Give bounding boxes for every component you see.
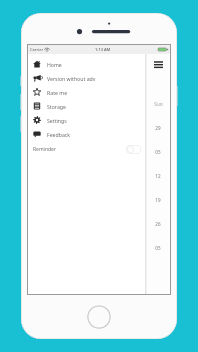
button[interactable]: Rate me [28,85,145,99]
staticText: Home [47,61,62,68]
button[interactable]: Settings [28,113,145,127]
staticText: 05 [155,149,161,155]
staticText: Settings [47,117,67,124]
staticText: Carrier [30,47,44,52]
staticText: 05 [155,245,161,251]
button[interactable]: Reminder toggle [126,145,141,154]
button[interactable]: Open menu [152,58,164,70]
button[interactable]: Feedback [28,127,145,141]
button[interactable]: Storage [28,99,145,113]
staticText: 29 [155,125,161,131]
staticText: 26 [155,221,161,227]
staticText: Sun [154,101,163,107]
staticText: 1:13 AM [95,47,111,52]
staticText: Reminder [33,146,56,153]
staticText: 12 [155,173,161,179]
button[interactable]: Reminder [28,141,145,157]
staticText: Feedback [47,131,71,138]
button[interactable]: Home [28,57,145,71]
staticText: 19 [155,197,161,203]
button[interactable]: Version without adv [28,71,145,85]
staticText: Rate me [47,89,68,96]
staticText: Version without adv [47,75,96,82]
button[interactable]: Home button [87,305,111,329]
staticText: Storage [47,103,66,110]
